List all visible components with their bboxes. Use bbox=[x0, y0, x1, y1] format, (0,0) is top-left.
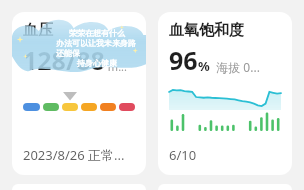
staticText: % bbox=[198, 57, 210, 75]
staticText: m... bbox=[105, 59, 127, 74]
staticText: 海拔 0... bbox=[210, 59, 260, 75]
button[interactable]: 血压 bbox=[12, 12, 146, 175]
button[interactable]: 血氧饱和度 bbox=[158, 12, 292, 175]
staticText: 办法可以让我未来身路还能保 bbox=[56, 38, 138, 58]
staticText: 血氧饱和度 bbox=[169, 21, 244, 40]
staticText: 2023/8/26 正常... bbox=[23, 146, 125, 164]
staticText: 血压 bbox=[23, 21, 53, 40]
other: Promotion banner bbox=[12, 16, 146, 72]
staticText: 6/10 bbox=[169, 146, 197, 164]
staticText: 荣荣在想有什么 bbox=[69, 28, 125, 38]
staticText: 持身心健康 bbox=[77, 58, 117, 68]
staticText: 96 bbox=[169, 43, 198, 77]
staticText: 128/88 bbox=[23, 43, 105, 77]
